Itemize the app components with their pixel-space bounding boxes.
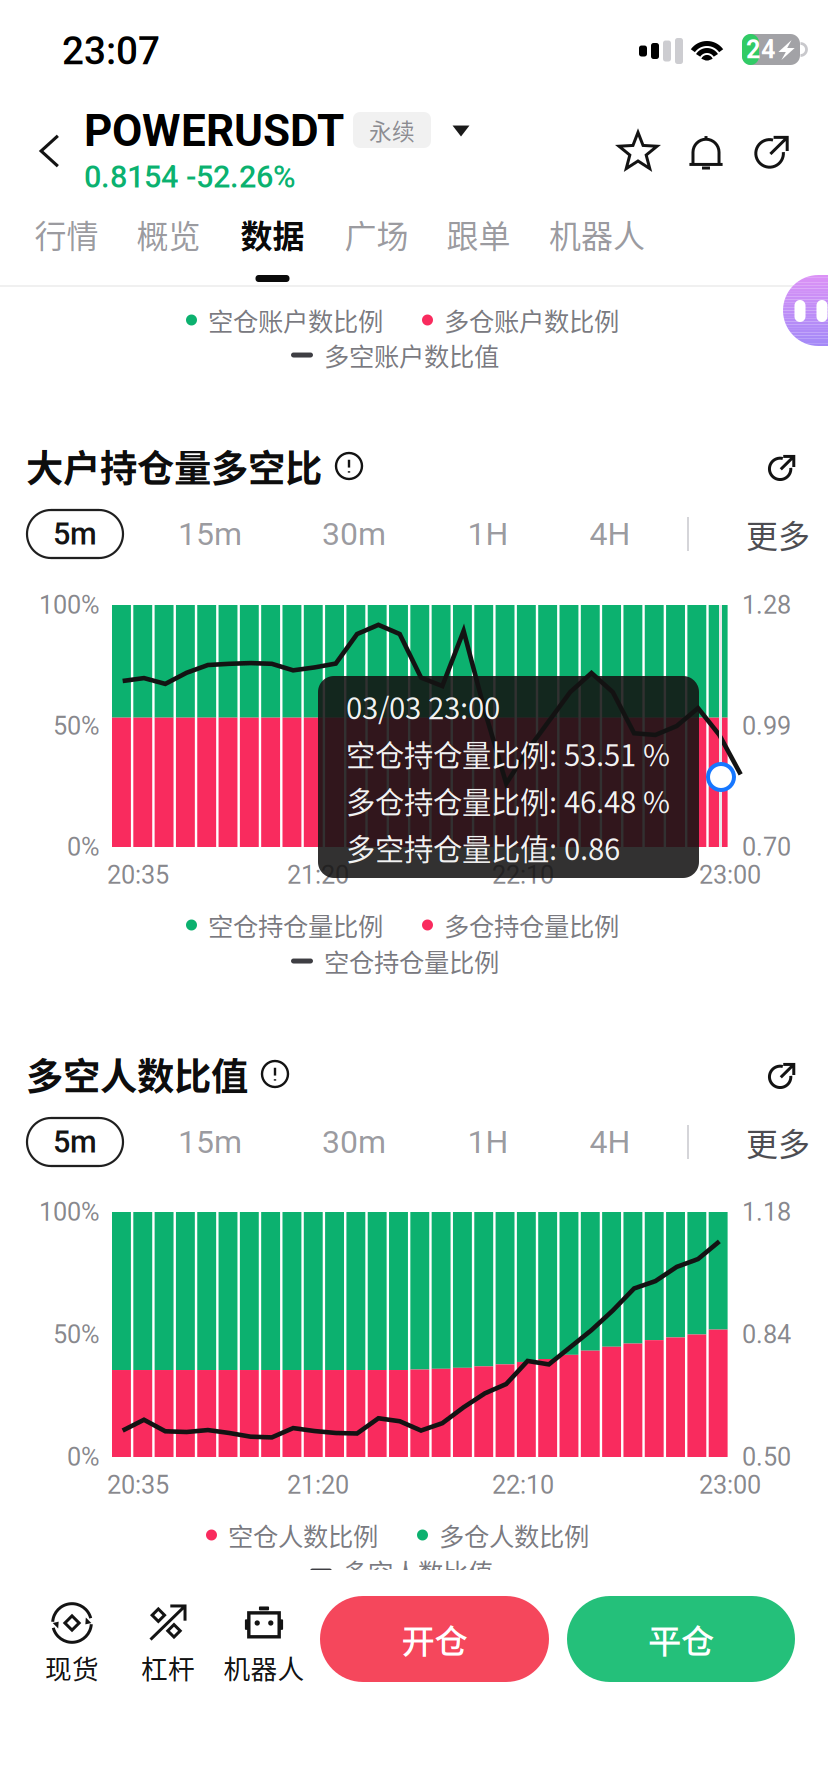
staticText: 0.84 (742, 1320, 791, 1349)
staticText: 0.70 (742, 832, 791, 862)
staticText: 24 (746, 35, 776, 64)
button[interactable]: 4H (572, 510, 648, 558)
button[interactable]: Share (741, 120, 803, 182)
staticText: 0% (67, 832, 100, 862)
staticText: 机器人 (223, 1648, 304, 1687)
staticText: 杠杆 (141, 1648, 195, 1687)
staticText: 1H (467, 1123, 508, 1161)
staticText: 100% (39, 1197, 100, 1227)
staticText: 03/03 23:00 (346, 685, 500, 728)
staticText: 多空人数比值 (26, 1047, 248, 1101)
staticText: 21:20 (287, 1470, 349, 1500)
button[interactable]: 概览 (120, 210, 217, 290)
button[interactable]: 更多 (746, 1118, 828, 1166)
button[interactable]: 现货 (26, 1600, 118, 1704)
staticText: 30m (322, 515, 386, 553)
staticText: 跟单 (446, 211, 510, 257)
staticText: 多仓人数比例 (439, 1517, 589, 1553)
staticText: 23:00 (699, 1470, 761, 1500)
staticText: 空仓账户数比例 (208, 302, 383, 338)
staticText: 15m (178, 1123, 242, 1161)
staticText: 多仓持仓量比例 (444, 907, 619, 943)
button[interactable]: 数据 (224, 210, 321, 290)
staticText: 多空持仓量比值: 0.86 (346, 826, 620, 869)
staticText: 1H (467, 515, 508, 553)
staticText: 0% (67, 1442, 100, 1472)
staticText: 现货 (45, 1648, 99, 1687)
staticText: 5m (53, 516, 97, 552)
button[interactable]: 更多 (746, 510, 828, 558)
button[interactable]: 开仓 (320, 1596, 549, 1682)
staticText: 开仓 (401, 1615, 467, 1663)
staticText: 50% (53, 711, 100, 741)
button[interactable]: 5m (27, 1118, 123, 1166)
staticText: 4H (589, 515, 630, 553)
staticText: 空仓持仓量比例 (208, 907, 383, 943)
staticText: 机器人 (549, 211, 645, 257)
button[interactable]: 跟单 (430, 210, 527, 290)
staticText: 21:20 (287, 860, 349, 890)
staticText: 23:07 (62, 28, 160, 74)
staticText: 多仓账户数比例 (444, 302, 619, 338)
staticText: 0.8154 -52.26% (84, 159, 296, 195)
button[interactable]: Price alert (675, 120, 737, 182)
button[interactable]: 机器人 (533, 210, 661, 290)
staticText: 0.50 (742, 1442, 791, 1472)
staticText: 多空人数比值 (343, 1553, 493, 1589)
staticText: 平仓 (648, 1615, 714, 1663)
button[interactable]: Back (20, 120, 82, 182)
button[interactable]: 广场 (328, 210, 425, 290)
button[interactable]: 30m (304, 510, 404, 558)
staticText: 空仓持仓量比例: 53.51 % (346, 732, 670, 775)
button[interactable]: 5m (27, 510, 123, 558)
staticText: 空仓持仓量比例 (324, 943, 499, 979)
button[interactable]: 30m (304, 1118, 404, 1166)
staticText: 多空账户数比值 (324, 337, 499, 373)
staticText: 概览 (136, 211, 200, 257)
staticText: 5m (53, 1124, 97, 1160)
button[interactable]: 平仓 (567, 1596, 795, 1682)
staticText: 100% (39, 590, 100, 620)
button[interactable]: Expand chart (762, 1055, 802, 1095)
staticText: 行情 (34, 211, 98, 257)
staticText: 大户持仓量多空比 (26, 439, 322, 493)
staticText: POWERUSDT (84, 105, 344, 157)
staticText: 广场 (344, 211, 408, 257)
button[interactable]: 行情 (18, 210, 115, 290)
button[interactable]: 1H (450, 510, 526, 558)
button[interactable]: 1H (450, 1118, 526, 1166)
button[interactable]: Trading bot (783, 275, 828, 346)
button[interactable]: 永续 (353, 112, 431, 148)
staticText: 23:00 (699, 860, 761, 890)
button[interactable]: Expand chart (762, 447, 802, 487)
staticText: 数据 (240, 211, 304, 257)
staticText: 更多 (746, 1119, 810, 1165)
button[interactable]: 杠杆 (122, 1600, 214, 1704)
button[interactable]: Favourite (607, 120, 669, 182)
button[interactable]: Contract type (447, 120, 475, 142)
button[interactable]: 15m (160, 510, 260, 558)
staticText: 30m (322, 1123, 386, 1161)
staticText: 20:35 (107, 860, 169, 890)
button[interactable]: 机器人 (215, 1600, 313, 1704)
staticText: 空仓人数比例 (228, 1517, 378, 1553)
staticText: 永续 (369, 114, 415, 146)
button[interactable]: 15m (160, 1118, 260, 1166)
staticText: 更多 (746, 511, 810, 557)
staticText: 4H (589, 1123, 630, 1161)
button[interactable]: 4H (572, 1118, 648, 1166)
staticText: 0.99 (742, 711, 791, 741)
staticText: 1.28 (742, 590, 791, 620)
staticText: 50% (53, 1320, 100, 1349)
staticText: 22:10 (492, 860, 554, 890)
staticText: 1.18 (742, 1197, 791, 1227)
staticText: 15m (178, 515, 242, 553)
staticText: 多仓持仓量比例: 46.48 % (346, 779, 670, 822)
staticText: 22:10 (492, 1470, 554, 1500)
staticText: 20:35 (107, 1470, 169, 1500)
